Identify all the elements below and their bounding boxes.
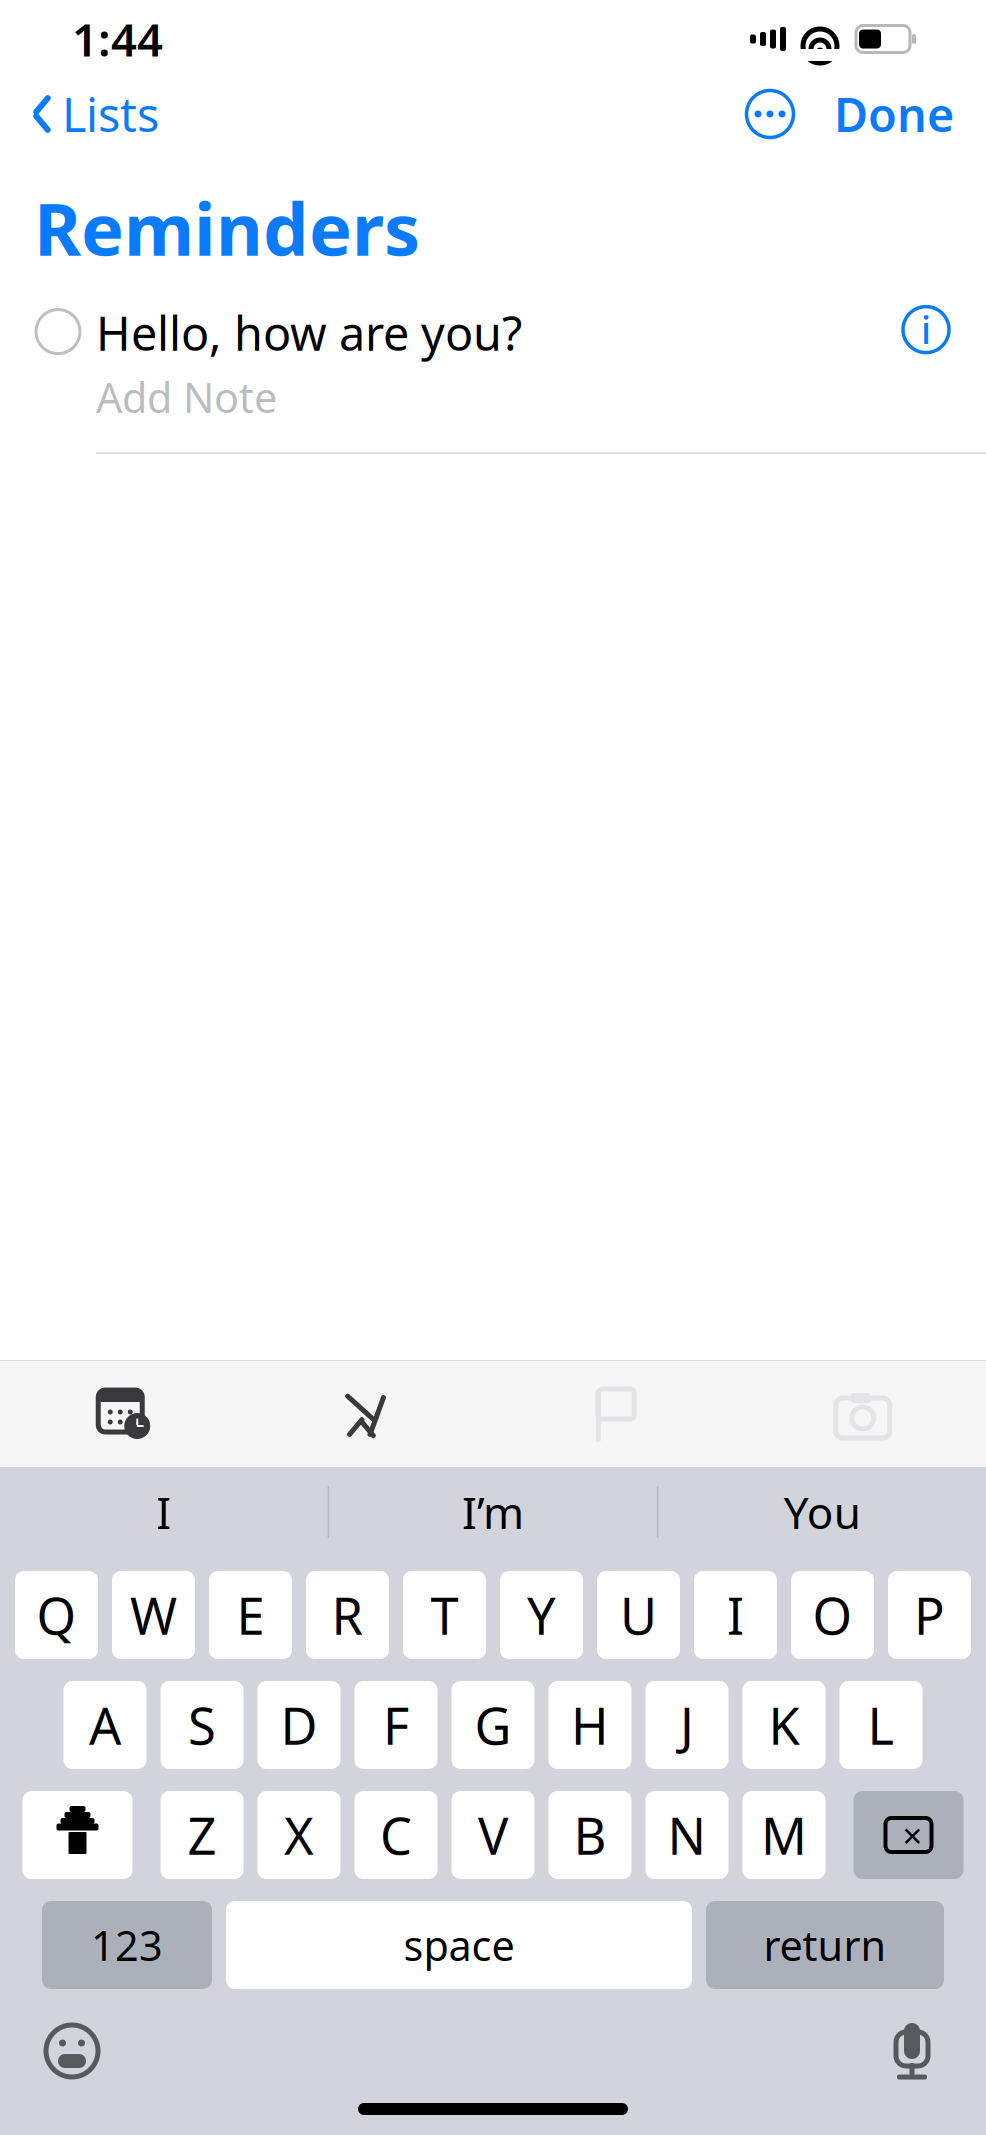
button[interactable]: Lists: [32, 77, 159, 151]
staticText: R: [331, 1581, 363, 1649]
staticText: Q: [36, 1581, 76, 1649]
staticText: Done: [834, 83, 954, 145]
button[interactable]: L: [839, 1681, 922, 1769]
button[interactable]: Add photo: [834, 1385, 892, 1443]
button[interactable]: Done: [798, 77, 954, 151]
staticText: Add Note: [96, 370, 277, 424]
button[interactable]: T: [403, 1571, 486, 1659]
staticText: D: [280, 1691, 317, 1759]
button[interactable]: I: [694, 1571, 777, 1659]
staticText: E: [236, 1581, 264, 1649]
button[interactable]: G: [451, 1681, 534, 1769]
staticText: V: [478, 1801, 508, 1869]
staticText: W: [130, 1581, 177, 1649]
staticText: K: [768, 1691, 799, 1759]
button[interactable]: Dictate: [882, 2020, 942, 2082]
button[interactable]: X: [257, 1791, 340, 1879]
staticText: A: [89, 1691, 121, 1759]
button[interactable]: B: [548, 1791, 631, 1879]
button[interactable]: N: [645, 1791, 728, 1879]
button[interactable]: K: [742, 1681, 825, 1769]
button[interactable]: return: [706, 1901, 944, 1989]
staticText: G: [474, 1691, 511, 1759]
button[interactable]: V: [451, 1791, 534, 1879]
staticText: U: [620, 1581, 657, 1649]
button[interactable]: R: [306, 1571, 389, 1659]
button[interactable]: D: [257, 1681, 340, 1769]
button[interactable]: Q: [15, 1571, 98, 1659]
staticText: You: [784, 1483, 861, 1541]
button[interactable]: Shift: [22, 1791, 132, 1879]
staticText: ×: [902, 1812, 922, 1858]
staticText: T: [430, 1581, 458, 1649]
staticText: return: [763, 1918, 886, 1972]
staticText: J: [680, 1691, 694, 1759]
staticText: i: [921, 305, 931, 354]
button[interactable]: F: [354, 1681, 437, 1769]
button[interactable]: I: [0, 1467, 328, 1557]
staticText: X: [284, 1801, 314, 1869]
button[interactable]: W: [112, 1571, 195, 1659]
button[interactable]: You: [658, 1467, 986, 1557]
button[interactable]: Add location: [341, 1385, 399, 1443]
staticText: 123: [91, 1918, 163, 1972]
staticText: I: [156, 1483, 171, 1541]
staticText: P: [914, 1581, 945, 1649]
button[interactable]: Add date and time: [94, 1385, 152, 1443]
button[interactable]: O: [791, 1571, 874, 1659]
button[interactable]: space: [226, 1901, 692, 1989]
button[interactable]: Emoji: [42, 2021, 102, 2081]
button[interactable]: Details: [898, 302, 986, 358]
button[interactable]: I’m: [329, 1467, 657, 1557]
staticText: Reminders: [34, 180, 420, 276]
staticText: I’m: [462, 1483, 524, 1541]
button[interactable]: Z: [160, 1791, 243, 1879]
staticText: Z: [187, 1801, 216, 1869]
staticText: S: [188, 1691, 216, 1759]
staticText: space: [403, 1918, 514, 1972]
button[interactable]: U: [597, 1571, 680, 1659]
button[interactable]: J: [645, 1681, 728, 1769]
staticText: 1:44: [72, 9, 163, 69]
staticText: M: [761, 1801, 807, 1869]
button[interactable]: E: [209, 1571, 292, 1659]
button[interactable]: More options: [742, 86, 798, 142]
button[interactable]: Delete: [853, 1791, 963, 1879]
staticText: F: [383, 1691, 409, 1759]
staticText: Y: [527, 1581, 556, 1649]
button[interactable]: M: [742, 1791, 825, 1879]
staticText: Hello, how are you?: [96, 302, 522, 364]
staticText: C: [380, 1801, 412, 1869]
staticText: I: [727, 1581, 744, 1649]
staticText: B: [573, 1801, 606, 1869]
button[interactable]: P: [888, 1571, 971, 1659]
button[interactable]: Y: [500, 1571, 583, 1659]
button[interactable]: Flag: [587, 1385, 645, 1443]
staticText: H: [571, 1691, 609, 1759]
button[interactable]: Mark complete: [0, 302, 96, 354]
staticText: N: [667, 1801, 706, 1869]
button[interactable]: A: [63, 1681, 146, 1769]
staticText: L: [867, 1691, 894, 1759]
button[interactable]: H: [548, 1681, 631, 1769]
button[interactable]: S: [160, 1681, 243, 1769]
staticText: Lists: [62, 83, 159, 145]
button[interactable]: 123: [42, 1901, 212, 1989]
staticText: O: [812, 1581, 852, 1649]
button[interactable]: C: [354, 1791, 437, 1879]
